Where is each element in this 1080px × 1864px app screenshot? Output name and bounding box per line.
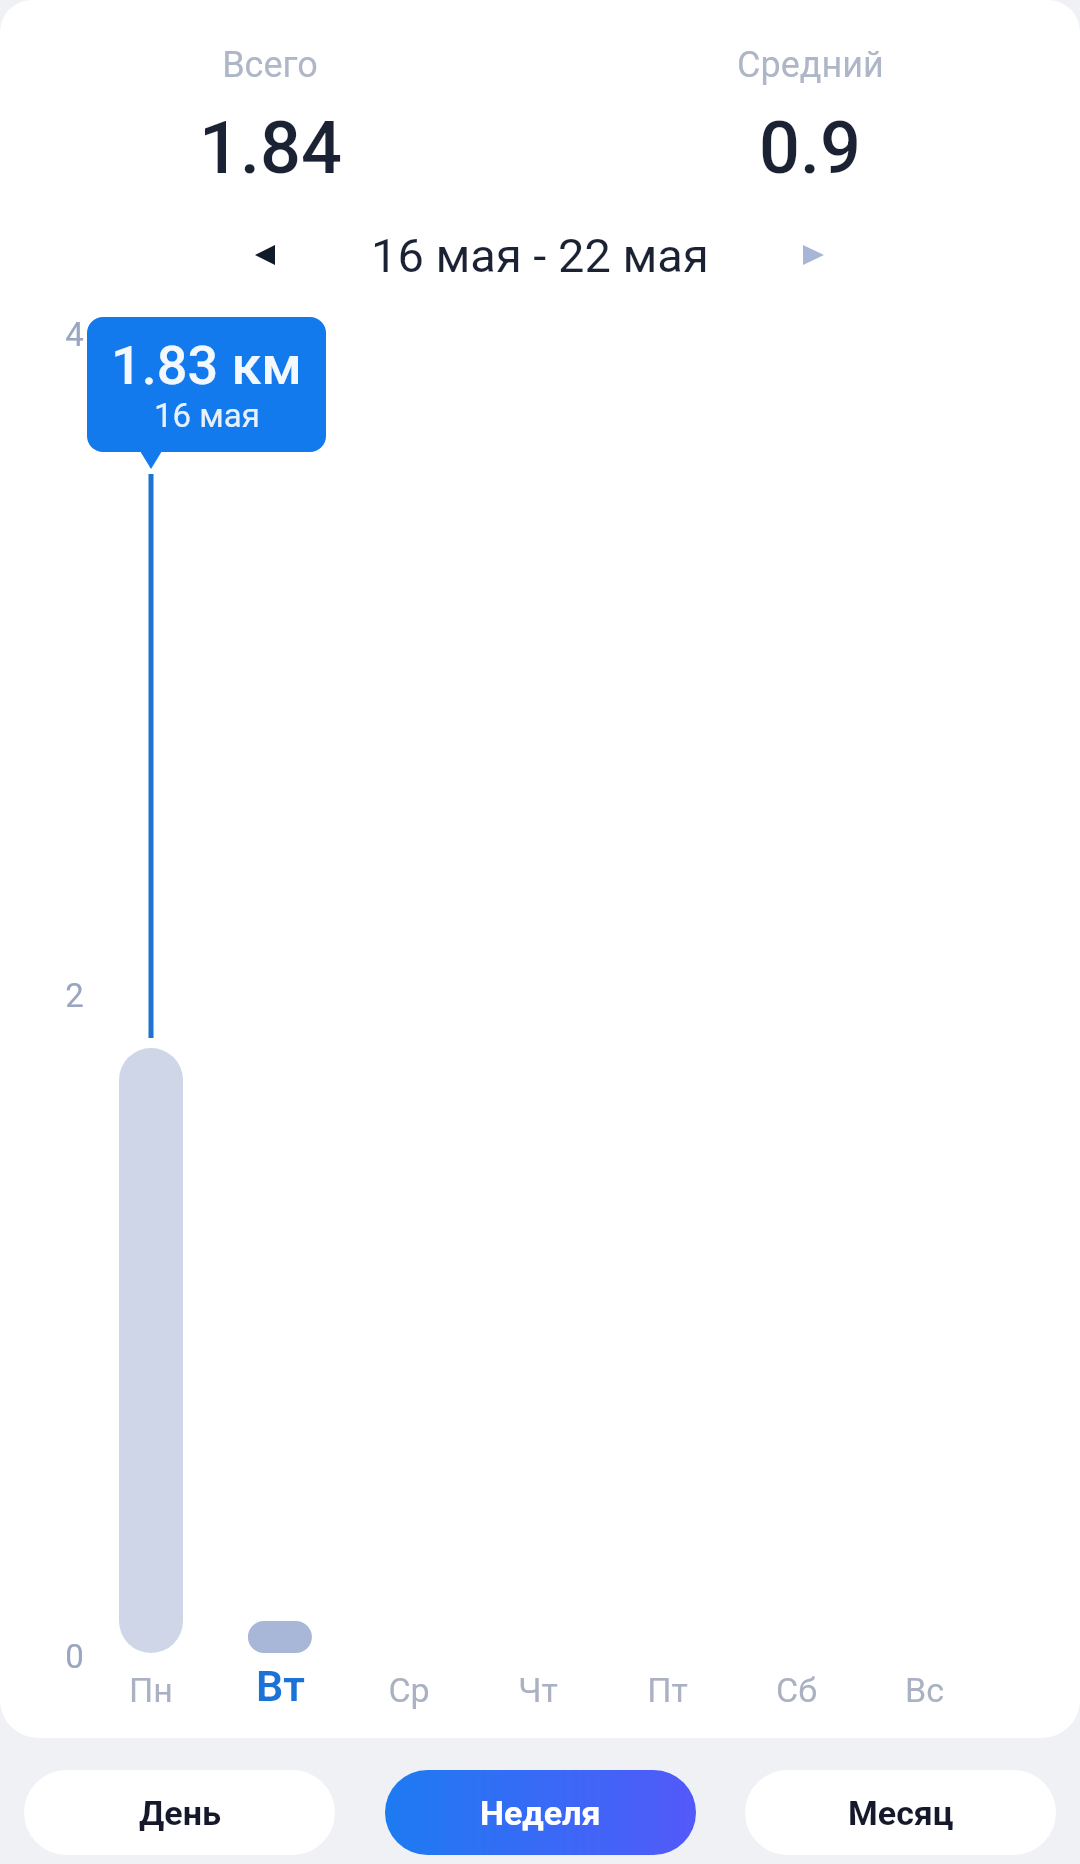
button[interactable]: Next week xyxy=(785,227,841,283)
staticText: 4 xyxy=(65,315,84,354)
staticText: Чт xyxy=(518,1670,558,1710)
staticText: 1.83 км xyxy=(111,334,302,397)
button[interactable]: Неделя xyxy=(385,1770,696,1855)
button[interactable]: Вт xyxy=(218,1658,342,1714)
staticText: Ср xyxy=(388,1670,430,1710)
button[interactable]: Пт xyxy=(605,1662,729,1718)
staticText: Пт xyxy=(647,1670,688,1710)
staticText: День xyxy=(139,1793,221,1833)
button[interactable]: Пн xyxy=(89,1662,213,1718)
staticText: Вс xyxy=(905,1670,944,1710)
button[interactable]: Ср xyxy=(347,1662,471,1718)
button[interactable]: Сб xyxy=(734,1662,858,1718)
staticText: Вт xyxy=(256,1661,305,1711)
button[interactable]: Месяц xyxy=(745,1770,1056,1855)
staticText: Пн xyxy=(129,1670,173,1710)
staticText: 1.84 xyxy=(199,106,342,190)
staticText: 16 мая xyxy=(154,396,260,435)
staticText: 0.9 xyxy=(759,106,861,190)
button[interactable]: День xyxy=(24,1770,335,1855)
staticText: Средний xyxy=(737,44,884,86)
staticText: Всего xyxy=(222,44,318,86)
staticText: Месяц xyxy=(848,1793,954,1833)
button[interactable]: Bar for Вт xyxy=(240,480,320,1653)
button[interactable]: Bar for Пн xyxy=(111,480,191,1653)
staticText: Сб xyxy=(776,1670,817,1710)
staticText: 16 мая - 22 мая xyxy=(371,228,709,283)
staticText: Неделя xyxy=(480,1793,601,1833)
button[interactable]: Вс xyxy=(862,1662,986,1718)
button[interactable]: 1.83 км xyxy=(87,317,326,452)
button[interactable]: Чт xyxy=(476,1662,600,1718)
staticText: 0 xyxy=(65,1637,84,1676)
staticText: 2 xyxy=(65,976,84,1015)
button[interactable]: Previous week xyxy=(237,227,293,283)
